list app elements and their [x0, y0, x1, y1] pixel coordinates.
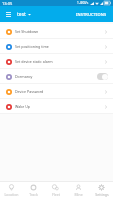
- button[interactable]: INSTRUCTIONS: [75, 10, 108, 19]
- button[interactable]: Toggle Dormancy: [97, 73, 108, 80]
- staticText: 13:05: [2, 1, 13, 6]
- button[interactable]: Device Password: [0, 84, 113, 99]
- staticText: Mine: [74, 192, 83, 197]
- staticText: Location: [4, 192, 19, 197]
- staticText: Dormancy: [15, 74, 33, 79]
- button[interactable]: Fleet: [44, 181, 67, 200]
- button[interactable]: Dormancy: [0, 69, 113, 84]
- staticText: INSTRUCTIONS: [76, 12, 107, 17]
- button[interactable]: Mine: [67, 181, 90, 200]
- button[interactable]: Wake Up: [0, 99, 113, 114]
- staticText: 1.4KB/s: [77, 1, 89, 5]
- staticText: Device Password: [15, 89, 44, 94]
- button[interactable]: Location: [0, 181, 22, 200]
- staticText: Set positioning time: [15, 44, 49, 49]
- staticText: Wake Up: [15, 104, 31, 109]
- button[interactable]: Settings: [90, 181, 113, 200]
- button[interactable]: Track: [22, 181, 44, 200]
- button[interactable]: Set device static alarm: [0, 54, 113, 69]
- button[interactable]: Set positioning time: [0, 39, 113, 54]
- staticText: Set Shutdown: [15, 29, 39, 34]
- staticText: Track: [29, 192, 38, 197]
- button[interactable]: Menu: [3, 9, 14, 20]
- staticText: Fleet: [52, 192, 60, 197]
- button[interactable]: Set Shutdown: [0, 24, 113, 39]
- staticText: test: [17, 11, 26, 18]
- staticText: Set device static alarm: [15, 59, 53, 64]
- staticText: Settings: [95, 192, 109, 197]
